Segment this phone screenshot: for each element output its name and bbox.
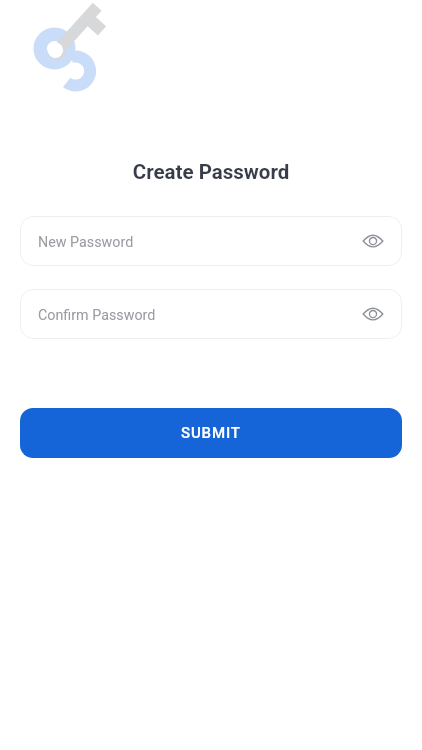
button[interactable]: New Password [20,216,402,266]
button[interactable]: Show password [360,301,386,327]
button[interactable]: Show password [360,228,386,254]
staticText: New Password [38,234,134,251]
button[interactable]: SUBMIT [20,408,402,458]
staticText: Create Password [0,160,422,184]
staticText: Confirm Password [38,307,156,324]
staticText: SUBMIT [181,424,241,442]
button[interactable]: Confirm Password [20,289,402,339]
